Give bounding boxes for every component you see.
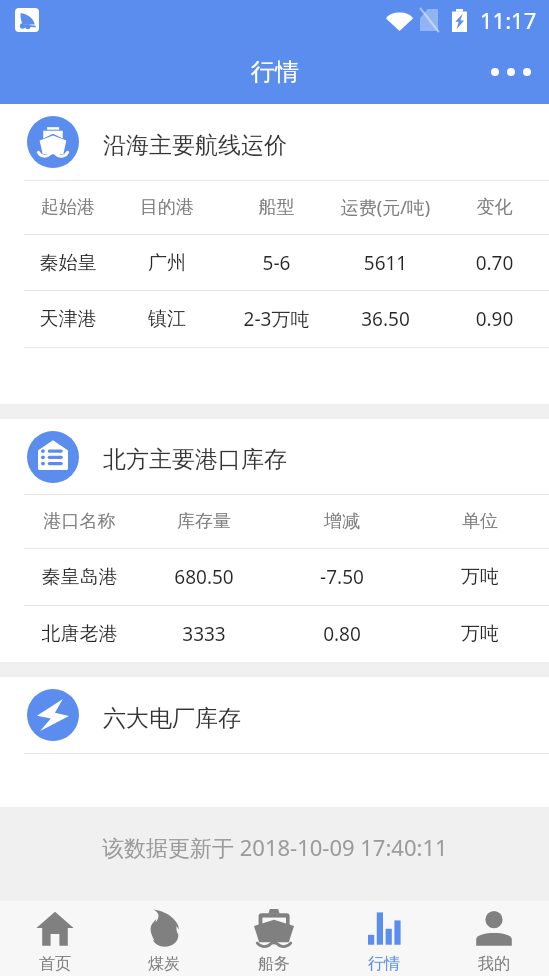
staticText: 秦始皇 [24, 251, 112, 275]
staticText: 首页 [39, 954, 71, 974]
button[interactable]: 我的 [439, 901, 549, 976]
staticText: 0.70 [440, 250, 549, 276]
button[interactable]: 北方主要港口库存 [0, 419, 549, 494]
button[interactable]: 首页 [0, 901, 109, 976]
button[interactable]: 秦皇岛港 [0, 549, 549, 605]
staticText: 5-6 [222, 250, 331, 276]
staticText: 变化 [440, 196, 549, 219]
staticText: 船型 [222, 196, 331, 219]
button[interactable]: 秦始皇 [0, 235, 549, 290]
button[interactable]: 煤炭 [109, 901, 219, 976]
staticText: 天津港 [24, 307, 112, 331]
staticText: 5611 [331, 250, 440, 276]
staticText: 2-3万吨 [222, 306, 331, 332]
staticText: 起始港 [24, 196, 112, 219]
staticText: 我的 [478, 954, 510, 974]
staticText: 36.50 [331, 306, 440, 332]
staticText: 3333 [135, 621, 273, 647]
button[interactable]: 行情 [329, 901, 439, 976]
staticText: -7.50 [273, 564, 411, 590]
staticText: 港口名称 [24, 510, 135, 533]
staticText: 行情 [251, 57, 299, 87]
staticText: 680.50 [135, 564, 273, 590]
button[interactable]: 船务 [219, 901, 329, 976]
staticText: 单位 [411, 510, 549, 533]
staticText: 增减 [273, 510, 411, 533]
staticText: 该数据更新于 2018-10-09 17:40:11 [102, 832, 448, 862]
staticText: 0.80 [273, 621, 411, 647]
button[interactable]: 北唐老港 [0, 606, 549, 662]
staticText: 万吨 [411, 565, 549, 589]
staticText: 库存量 [135, 510, 273, 533]
staticText: 万吨 [411, 622, 549, 646]
staticText: 煤炭 [148, 954, 180, 974]
staticText: 目的港 [112, 196, 222, 219]
button[interactable]: 天津港 [0, 291, 549, 347]
staticText: 0.90 [440, 306, 549, 332]
staticText: 镇江 [112, 307, 222, 331]
staticText: 六大电厂库存 [103, 704, 241, 733]
button[interactable]: 六大电厂库存 [0, 677, 549, 753]
staticText: 11:17 [480, 5, 537, 35]
staticText: 北唐老港 [24, 622, 135, 646]
staticText: 广州 [112, 251, 222, 275]
staticText: 船务 [258, 954, 290, 974]
staticText: 沿海主要航线运价 [103, 131, 287, 160]
button[interactable]: More options [473, 50, 549, 94]
staticText: 北方主要港口库存 [103, 445, 287, 474]
button[interactable]: 沿海主要航线运价 [0, 104, 549, 180]
staticText: 行情 [368, 954, 400, 974]
staticText: 运费(元/吨) [331, 195, 440, 220]
staticText: 秦皇岛港 [24, 565, 135, 589]
